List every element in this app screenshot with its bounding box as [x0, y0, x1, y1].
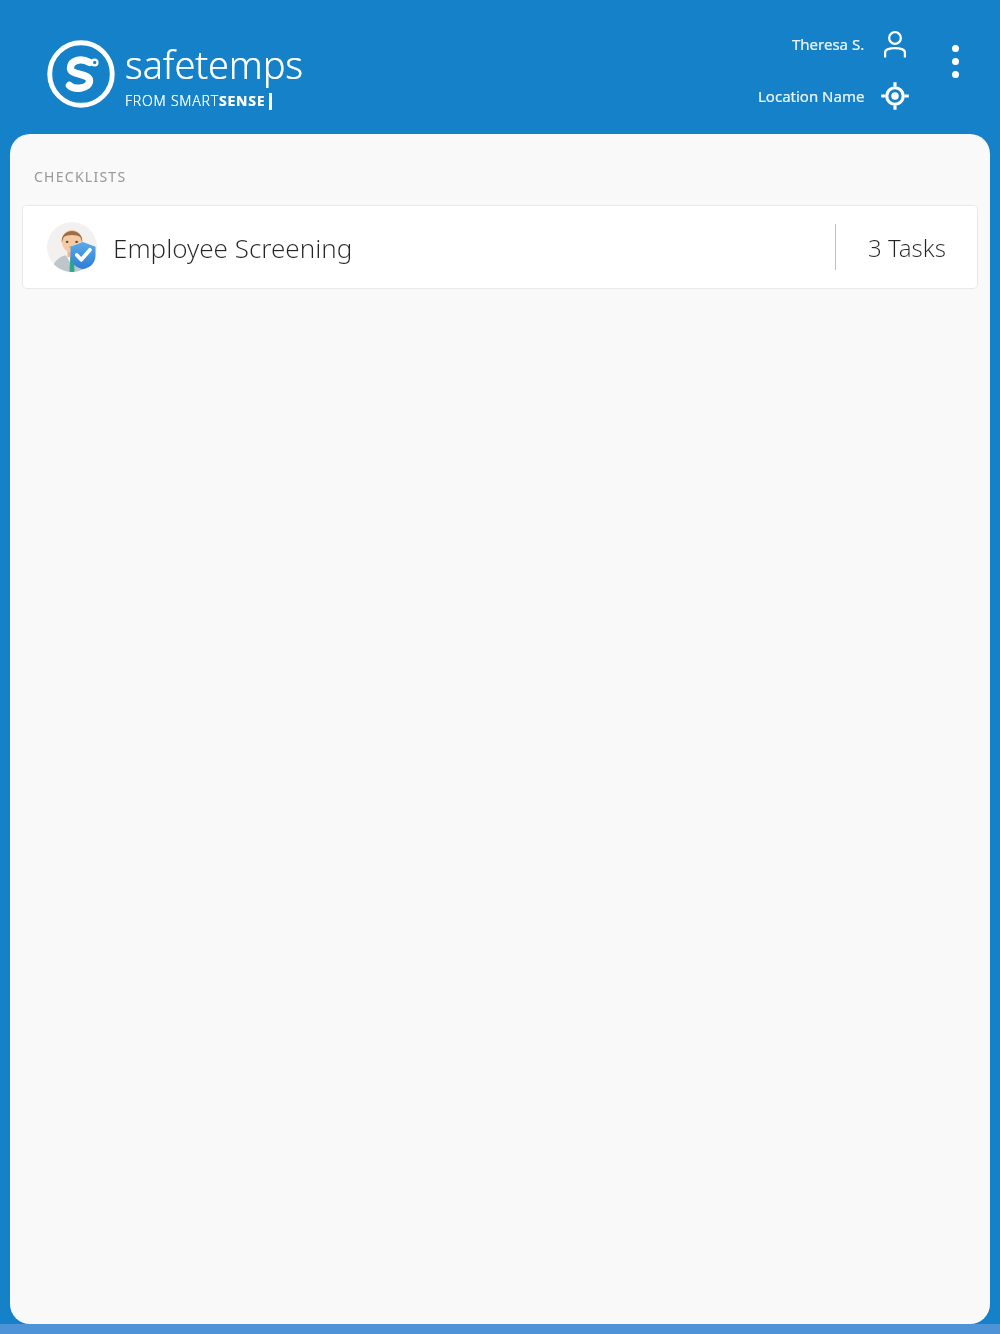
staticText: FROM SMART [125, 91, 219, 110]
other: User profile [880, 29, 910, 59]
other: Set location [880, 81, 910, 111]
staticText: Employee Screening [113, 230, 835, 265]
staticText: Location Name [758, 86, 865, 106]
staticText: Theresa S. [792, 34, 865, 54]
button[interactable]: SafeTemps from SmartSense [47, 38, 303, 110]
staticText: 3 Tasks [868, 231, 946, 264]
staticText: safetemps [125, 38, 303, 90]
staticText: CHECKLISTS [34, 167, 127, 186]
staticText: SENSE [219, 91, 266, 110]
button[interactable]: Theresa S. [788, 26, 914, 62]
button[interactable]: Location Name [754, 78, 914, 114]
button[interactable]: Employee Screening [22, 205, 978, 289]
button[interactable]: More options [932, 38, 978, 84]
